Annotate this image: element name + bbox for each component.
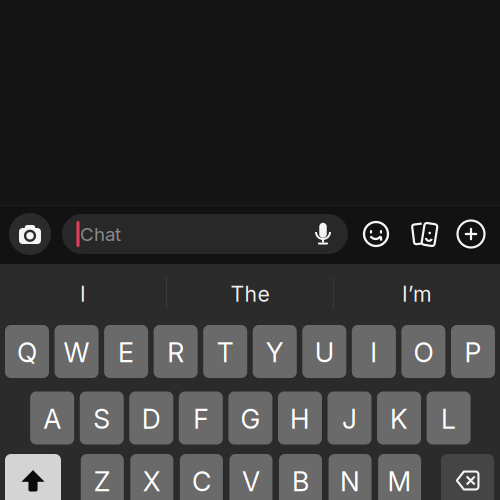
button[interactable]: Z xyxy=(81,454,124,500)
staticText: I xyxy=(370,336,377,369)
staticText: Z xyxy=(94,465,111,498)
staticText: L xyxy=(441,403,456,435)
staticText: N xyxy=(340,465,360,498)
button[interactable]: W xyxy=(54,325,98,378)
button[interactable]: The xyxy=(167,268,333,320)
button[interactable]: Y xyxy=(253,325,297,378)
button[interactable]: N xyxy=(329,454,372,500)
button[interactable]: H xyxy=(278,391,322,444)
staticText: B xyxy=(292,465,309,498)
button[interactable]: X xyxy=(130,454,173,500)
button[interactable]: I xyxy=(352,325,396,378)
button[interactable]: M xyxy=(378,454,421,500)
button[interactable]: I xyxy=(0,268,166,320)
button[interactable]: I’m xyxy=(334,268,500,320)
staticText: J xyxy=(342,403,357,435)
button[interactable]: C xyxy=(180,454,223,500)
button[interactable]: O xyxy=(401,325,445,378)
button[interactable]: Open camera xyxy=(9,213,51,255)
button[interactable]: Shift xyxy=(5,454,61,500)
staticText: A xyxy=(43,403,61,435)
staticText: C xyxy=(192,465,211,498)
button[interactable]: L xyxy=(427,391,471,444)
button[interactable]: U xyxy=(302,325,346,378)
staticText: I’m xyxy=(402,281,432,307)
staticText: V xyxy=(242,465,260,498)
button[interactable]: Stickers xyxy=(359,214,393,254)
button[interactable]: B xyxy=(279,454,322,500)
staticText: U xyxy=(315,336,334,369)
staticText: Q xyxy=(17,336,37,369)
staticText: F xyxy=(193,403,208,435)
staticText: D xyxy=(142,403,161,435)
button[interactable]: More options xyxy=(454,214,488,254)
staticText: I xyxy=(80,281,86,307)
button[interactable]: Delete xyxy=(441,454,494,500)
button[interactable]: V xyxy=(229,454,272,500)
button[interactable]: Cameos xyxy=(407,214,441,254)
button[interactable]: K xyxy=(377,391,421,444)
staticText: The xyxy=(230,281,269,307)
button[interactable]: A xyxy=(30,391,74,444)
staticText: S xyxy=(93,403,110,435)
button[interactable]: E xyxy=(104,325,148,378)
button[interactable]: G xyxy=(228,391,272,444)
button[interactable]: R xyxy=(154,325,198,378)
button[interactable]: T xyxy=(203,325,247,378)
staticText: H xyxy=(290,403,310,435)
button[interactable]: J xyxy=(327,391,371,444)
button[interactable]: Chat message field xyxy=(62,214,348,254)
staticText: R xyxy=(167,336,184,369)
staticText: W xyxy=(63,336,89,369)
staticText: Chat xyxy=(80,223,121,246)
staticText: Y xyxy=(266,336,284,369)
button[interactable]: Q xyxy=(5,325,49,378)
button[interactable]: S xyxy=(80,391,124,444)
staticText: X xyxy=(143,465,161,498)
button[interactable]: P xyxy=(451,325,495,378)
staticText: E xyxy=(118,336,134,369)
staticText: M xyxy=(388,465,412,498)
staticText: G xyxy=(240,403,260,435)
button[interactable]: F xyxy=(179,391,223,444)
staticText: K xyxy=(390,403,408,435)
button[interactable]: D xyxy=(129,391,173,444)
staticText: T xyxy=(217,336,234,369)
staticText: O xyxy=(413,336,433,369)
staticText: P xyxy=(464,336,481,369)
